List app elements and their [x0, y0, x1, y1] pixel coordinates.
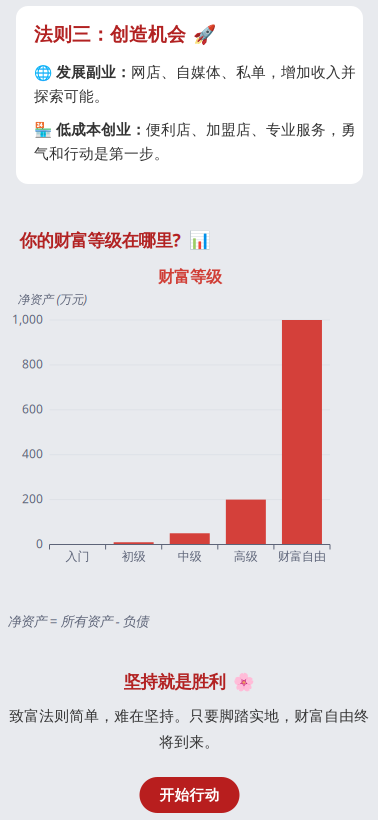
staticText: 🚀 [193, 24, 216, 45]
staticText: 净资产 (万元) [17, 291, 86, 307]
staticText: 你的财富等级在哪里? [19, 228, 180, 251]
staticText: 400 [22, 446, 43, 462]
staticText: 🏪 低成本创业：便利店、加盟店、专业服务，勇 气和行动是第一步。 [34, 119, 356, 163]
staticText: 800 [22, 356, 43, 372]
staticText: 致富法则简单，难在坚持。只要脚踏实地，财富自由终 将到来。 [9, 707, 369, 751]
staticText: 入门 [65, 549, 89, 564]
staticText: 财富自由 [278, 549, 326, 564]
staticText: 中级 [178, 549, 202, 564]
staticText: 财富等级 [158, 267, 222, 287]
staticText: 📊 [188, 230, 210, 250]
button[interactable]: 开始行动 [139, 777, 239, 813]
staticText: 1,000 [12, 311, 43, 327]
staticText: 坚持就是胜利 [123, 671, 225, 693]
staticText: 净资产 = 所有资产 - 负债 [7, 612, 148, 630]
staticText: 200 [22, 491, 43, 506]
staticText: 开始行动 [159, 786, 219, 804]
staticText: 0 [36, 535, 43, 551]
staticText: 🌐 发展副业：网店、自媒体、私单，增加收入并 探索可能。 [34, 62, 356, 105]
staticText: 🌸 [232, 672, 254, 692]
staticText: 600 [22, 401, 43, 417]
staticText: 高级 [234, 549, 258, 564]
staticText: 初级 [122, 549, 146, 564]
staticText: 法则三：创造机会 [34, 23, 186, 46]
